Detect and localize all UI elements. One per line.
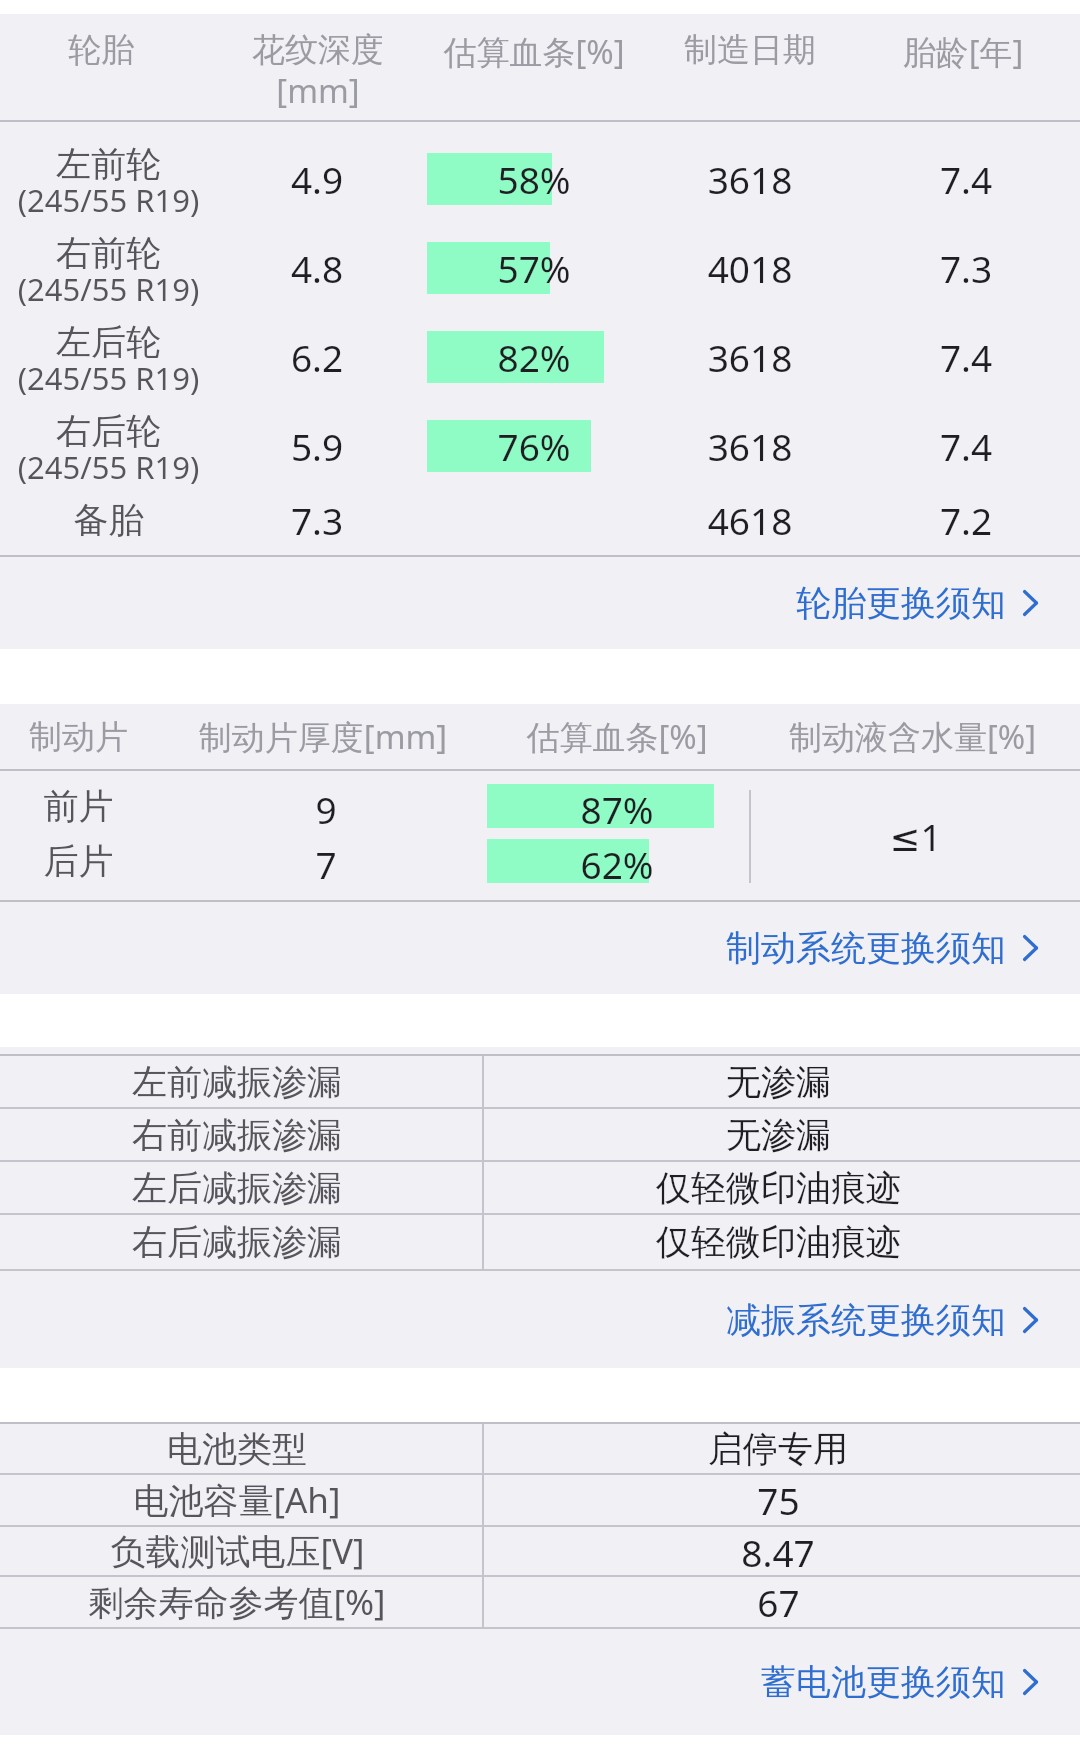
staticText: 4.9 — [217, 154, 417, 204]
button[interactable]: 减振系统更换须知 — [0, 1271, 1080, 1368]
staticText: 3618 — [644, 154, 856, 204]
staticText: 启停专用 — [708, 1427, 848, 1471]
staticText: 制动片 — [0, 716, 157, 758]
staticText: 7.2 — [856, 495, 1076, 545]
staticText: 制造日期 — [634, 29, 866, 71]
staticText: 右前轮 — [0, 231, 217, 275]
staticText: 电池容量[Ah] — [133, 1476, 341, 1524]
staticText: 左后减振渗漏 — [132, 1166, 342, 1210]
staticText: 7.4 — [856, 421, 1076, 471]
staticText: 左后轮 — [0, 320, 217, 364]
staticText: 9 — [157, 784, 495, 828]
staticText: 电池类型 — [167, 1427, 307, 1471]
staticText: 仅轻微印油痕迹 — [656, 1220, 901, 1264]
staticText: 7.3 — [217, 495, 417, 545]
staticText: 无渗漏 — [726, 1060, 831, 1104]
staticText: 负载测试电压[V] — [110, 1527, 365, 1575]
staticText: 4018 — [644, 243, 856, 293]
staticText: 3618 — [644, 421, 856, 471]
staticText: 7.4 — [856, 332, 1076, 382]
staticText: 3618 — [644, 332, 856, 382]
other: 减振系统更换须知 — [1023, 1307, 1038, 1333]
staticText: 7.3 — [856, 243, 1076, 293]
staticText: 4618 — [644, 495, 856, 545]
staticText: (245/55 R19) — [0, 179, 217, 221]
other: 轮胎更换须知 — [1023, 590, 1038, 616]
other: 制动系统更换须知 — [1023, 935, 1038, 961]
staticText: 胎龄[年] — [866, 29, 1060, 74]
staticText: 7 — [157, 839, 495, 883]
staticText: 备胎 — [0, 498, 217, 542]
staticText: 轮胎更换须知 — [796, 581, 1006, 625]
staticText: 花纹深度 [mm] — [202, 29, 434, 113]
staticText: 减振系统更换须知 — [726, 1298, 1006, 1342]
other: 蓄电池更换须知 — [1023, 1669, 1038, 1695]
staticText: 82% — [497, 332, 571, 382]
staticText: 制动片厚度[mm] — [157, 714, 489, 759]
staticText: 前片 — [0, 784, 157, 828]
staticText: ≤1 — [889, 811, 942, 861]
staticText: 8.47 — [741, 1527, 815, 1575]
staticText: (245/55 R19) — [0, 357, 217, 399]
staticText: 右后减振渗漏 — [132, 1220, 342, 1264]
staticText: 67 — [757, 1577, 800, 1627]
staticText: 左前轮 — [0, 142, 217, 186]
staticText: 4.8 — [217, 243, 417, 293]
staticText: 57% — [497, 243, 571, 293]
staticText: 后片 — [0, 839, 157, 883]
staticText: 无渗漏 — [726, 1113, 831, 1157]
staticText: 右后轮 — [0, 409, 217, 453]
staticText: 轮胎 — [0, 29, 202, 71]
staticText: 6.2 — [217, 332, 417, 382]
staticText: 制动液含水量[%] — [745, 714, 1080, 759]
staticText: 75 — [757, 1475, 800, 1525]
staticText: 右前减振渗漏 — [132, 1113, 342, 1157]
staticText: 估算血条[%] — [434, 29, 634, 74]
staticText: 62% — [580, 839, 654, 883]
staticText: 剩余寿命参考值[%] — [88, 1578, 386, 1626]
button[interactable]: 制动系统更换须知 — [0, 902, 1080, 994]
staticText: 仅轻微印油痕迹 — [656, 1166, 901, 1210]
staticText: 58% — [497, 154, 571, 204]
staticText: 7.4 — [856, 154, 1076, 204]
staticText: 76% — [497, 421, 571, 471]
staticText: 蓄电池更换须知 — [761, 1660, 1006, 1704]
staticText: (245/55 R19) — [0, 268, 217, 310]
staticText: 5.9 — [217, 421, 417, 471]
staticText: 左前减振渗漏 — [132, 1060, 342, 1104]
staticText: 87% — [580, 784, 654, 828]
staticText: 制动系统更换须知 — [726, 926, 1006, 970]
staticText: (245/55 R19) — [0, 446, 217, 488]
button[interactable]: 轮胎更换须知 — [0, 557, 1080, 649]
staticText: 估算血条[%] — [489, 714, 745, 759]
button[interactable]: 蓄电池更换须知 — [0, 1629, 1080, 1735]
